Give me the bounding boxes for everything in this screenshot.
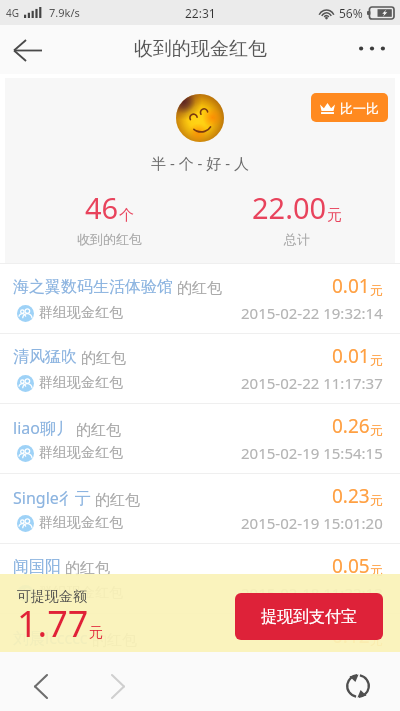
staticText: 的红包 <box>77 347 126 367</box>
staticText: 可提现金额 <box>17 588 87 606</box>
staticText: 收到的现金红包 <box>134 37 267 61</box>
staticText: 群组现金红包 <box>39 514 123 532</box>
staticText: 闻国阳 <box>13 557 61 577</box>
staticText: 王小明 <box>13 697 61 711</box>
staticText: 0.01 <box>332 343 370 369</box>
staticText: 4G <box>6 6 19 20</box>
staticText: 56% <box>339 5 363 21</box>
button[interactable]: Forward <box>94 662 142 710</box>
staticText: 群组现金红包 <box>39 444 123 462</box>
button[interactable]: 比一比 <box>311 93 388 122</box>
staticText: 2015-02-22 19:32:14 <box>241 303 383 323</box>
staticText: 比一比 <box>340 100 379 116</box>
staticText: liao聊丿 <box>13 417 72 439</box>
button[interactable]: Single彳亍 <box>0 474 400 544</box>
staticText: 0.08 <box>332 693 370 711</box>
button[interactable]: 王小明 <box>0 684 400 711</box>
staticText: 7.9k/s <box>49 5 80 20</box>
staticText: 元 <box>370 632 383 648</box>
staticText: 元 <box>327 206 342 225</box>
staticText: 2015-02-19 15:54:15 <box>241 443 383 463</box>
staticText: 的红包 <box>72 419 121 439</box>
staticText: 1.77 <box>17 599 89 645</box>
staticText: 元 <box>370 422 383 438</box>
button[interactable]: More options <box>354 32 390 68</box>
staticText: 的红包 <box>61 557 110 577</box>
staticText: 群组现金红包 <box>39 374 123 392</box>
staticText: 收到的红包 <box>77 231 142 247</box>
staticText: 46 <box>85 188 119 227</box>
staticText: 提现到支付宝 <box>261 607 357 627</box>
staticText: 元 <box>370 282 383 298</box>
staticText: 2015-02-22 11:17:37 <box>241 373 383 393</box>
staticText: 0.23 <box>332 483 370 509</box>
staticText: 0.26 <box>332 413 370 439</box>
staticText: 总计 <box>284 231 310 247</box>
staticText: 的红包 <box>173 277 222 297</box>
staticText: 2015-02-18 11:32:13 <box>241 583 383 603</box>
staticText: Single彳亍 <box>13 487 91 509</box>
button[interactable]: 提现到支付宝 <box>235 593 383 640</box>
staticText: 的红包 <box>88 629 137 649</box>
button[interactable]: 清风猛吹 <box>0 334 400 404</box>
button[interactable]: 闻国阳 <box>0 544 400 614</box>
staticText: 22.00 <box>252 188 327 227</box>
button[interactable]: 刘晨lccccc <box>0 614 400 684</box>
staticText: 0.12 <box>332 623 370 649</box>
staticText: 元 <box>89 624 103 642</box>
staticText: 清风猛吹 <box>13 347 77 367</box>
staticText: 元 <box>370 492 383 508</box>
staticText: 海之翼数码生活体验馆 <box>13 277 173 297</box>
button[interactable]: liao聊丿 <box>0 404 400 474</box>
staticText: 22:31 <box>185 5 216 21</box>
staticText: 元 <box>370 562 383 578</box>
staticText: 刘晨lccccc <box>13 627 88 649</box>
button[interactable]: Back <box>5 27 51 73</box>
staticText: 0.05 <box>332 553 370 579</box>
staticText: 群组现金红包 <box>39 584 123 602</box>
staticText: 半 - 个 - 好 - 人 <box>151 153 249 173</box>
button[interactable]: Refresh <box>334 662 382 710</box>
button[interactable]: Back <box>17 662 65 710</box>
staticText: 0.01 <box>332 273 370 299</box>
staticText: 个 <box>119 206 134 225</box>
staticText: 元 <box>370 352 383 368</box>
staticText: 群组现金红包 <box>39 304 123 322</box>
staticText: 2015-02-19 15:01:20 <box>241 513 383 533</box>
button[interactable]: 海之翼数码生活体验馆 <box>0 264 400 334</box>
staticText: 的红包 <box>91 489 140 509</box>
